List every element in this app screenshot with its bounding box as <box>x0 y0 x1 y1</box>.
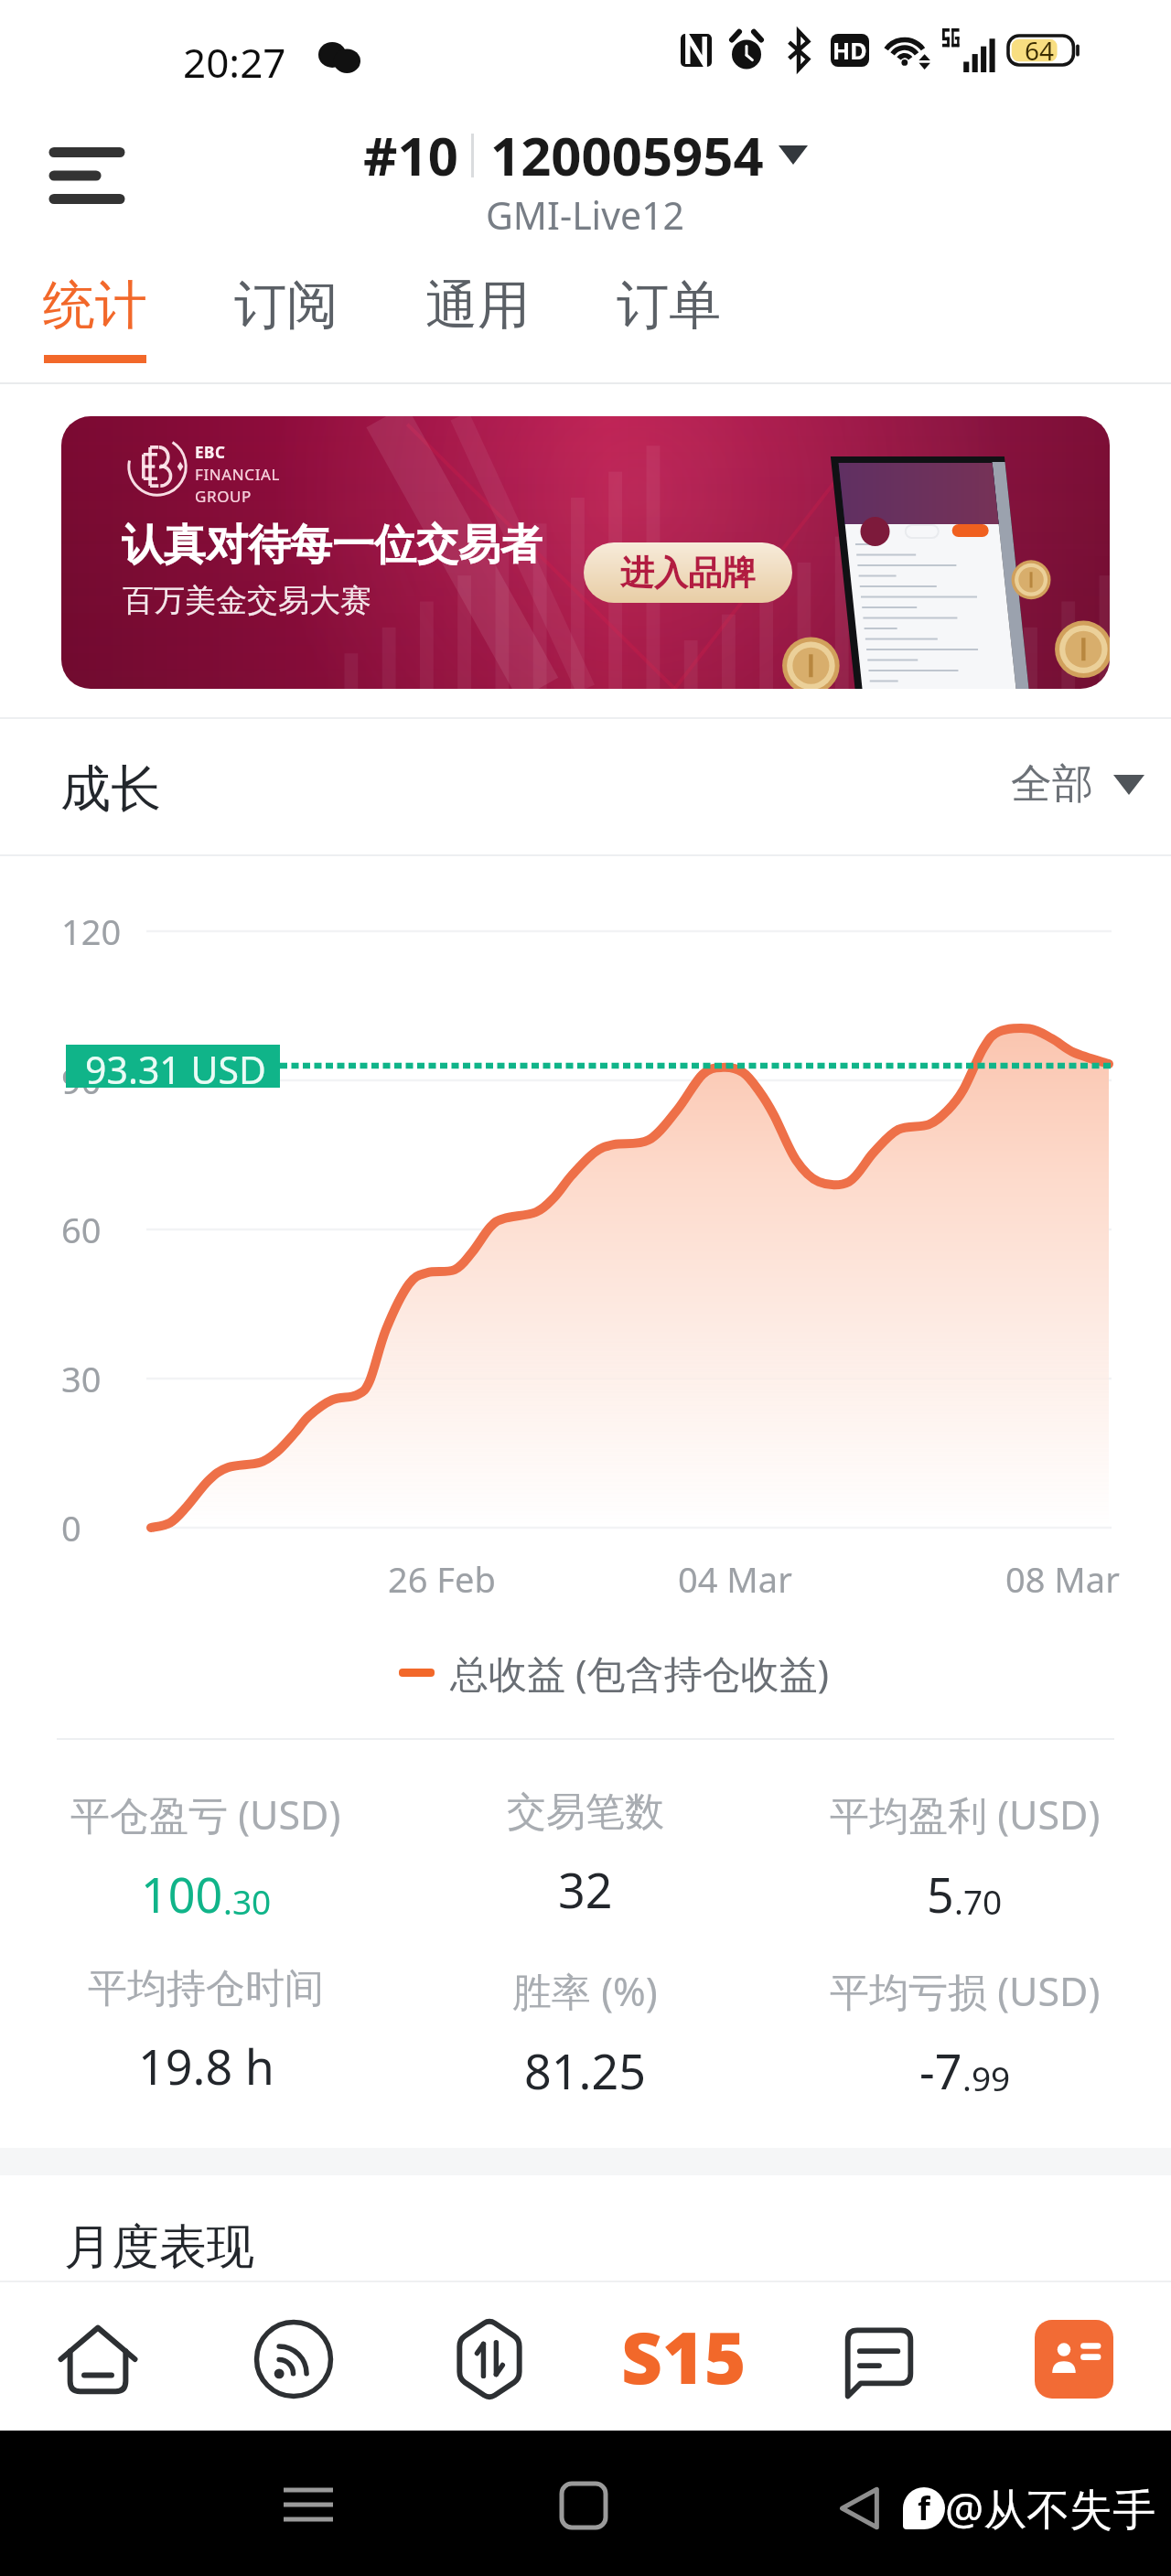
staticText: 通用 <box>425 273 530 338</box>
staticText: 32 <box>558 1857 613 1922</box>
staticText: 交易笔数 <box>507 1787 664 1837</box>
staticText: 平均盈利 (USD) <box>830 1787 1101 1841</box>
staticText: 60 <box>61 1206 102 1253</box>
staticText: 30 <box>61 1355 102 1402</box>
button[interactable]: Home <box>0 2287 196 2431</box>
staticText: 平均亏损 (USD) <box>830 1964 1101 2018</box>
staticText: 100 <box>141 1862 223 1927</box>
staticText: 百万美金交易大赛 <box>123 581 371 620</box>
staticText: 总收益 (包含持仓收益) <box>450 1647 830 1699</box>
staticText: .99 <box>962 2055 1011 2100</box>
button[interactable]: 通用 <box>400 249 555 384</box>
staticText: 04 Mar <box>678 1555 792 1603</box>
staticText: 26 Feb <box>388 1555 496 1603</box>
staticText: f <box>918 2487 930 2528</box>
staticText: 93.31 USD <box>85 1044 266 1087</box>
button[interactable]: 进入品牌 <box>584 542 792 603</box>
button[interactable]: Signals <box>196 2287 392 2431</box>
staticText: EBC <box>195 442 226 463</box>
button[interactable]: 统计 <box>17 249 173 384</box>
staticText: 08 Mar <box>1005 1555 1120 1603</box>
staticText: GMI-Live12 <box>486 189 685 241</box>
staticText: 20:27 <box>183 35 286 90</box>
staticText: .30 <box>223 1878 272 1924</box>
staticText: 月度表现 <box>64 2217 254 2278</box>
staticText: #10 <box>363 119 458 191</box>
button[interactable]: Chat <box>781 2287 976 2431</box>
button[interactable]: Trade <box>392 2287 586 2431</box>
staticText: S15 <box>621 2308 747 2405</box>
staticText: 平均持仓时间 <box>88 1964 324 2013</box>
staticText: 平仓盈亏 (USD) <box>70 1787 341 1841</box>
staticText: 成长 <box>60 757 161 821</box>
button[interactable]: 全部 <box>1011 758 1144 810</box>
button[interactable]: S15 <box>586 2287 781 2431</box>
staticText: 0 <box>61 1504 81 1551</box>
staticText: 胜率 (%) <box>512 1964 658 2018</box>
staticText: 订单 <box>617 273 721 338</box>
staticText: 19.8 h <box>138 2034 274 2098</box>
staticText: 进入品牌 <box>620 552 756 595</box>
staticText: 90 <box>61 1057 102 1104</box>
button[interactable]: EBC <box>61 416 1110 689</box>
staticText: @从不失手 <box>945 2479 1156 2538</box>
staticText: -7 <box>919 2038 962 2103</box>
staticText: 81.25 <box>524 2038 646 2103</box>
staticText: 订阅 <box>234 273 338 338</box>
staticText: .70 <box>954 1878 1003 1924</box>
staticText: 认真对待每一位交易者 <box>122 519 543 572</box>
staticText: 64 <box>1025 33 1055 66</box>
staticText: HD <box>833 35 867 66</box>
button[interactable]: Menu <box>33 123 141 229</box>
staticText: 120 <box>61 907 122 955</box>
staticText: FINANCIAL <box>195 464 280 485</box>
button[interactable]: Profile <box>976 2287 1171 2431</box>
staticText: 120005954 <box>490 119 764 191</box>
staticText: 统计 <box>43 273 147 338</box>
staticText: GROUP <box>195 486 252 507</box>
button[interactable]: 订单 <box>591 249 747 384</box>
staticText: 全部 <box>1011 758 1093 810</box>
button[interactable]: 订阅 <box>209 249 364 384</box>
staticText: 5 <box>927 1862 954 1927</box>
